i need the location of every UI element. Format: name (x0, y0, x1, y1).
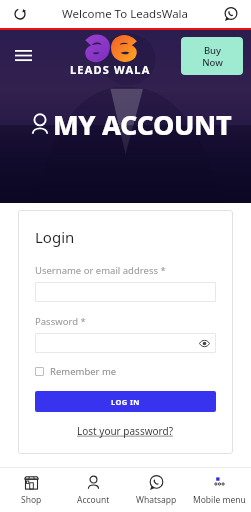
button[interactable]: Remember me (35, 365, 117, 378)
staticText: Whatsapp (136, 494, 177, 506)
staticText: Remember me (50, 365, 117, 378)
staticText: Shop (21, 494, 42, 506)
button[interactable]: Reload (8, 2, 32, 26)
button[interactable]: Mobile menu (188, 468, 251, 512)
button[interactable]: Show password (35, 333, 216, 353)
staticText: Buy Now (202, 44, 223, 68)
button[interactable]: Buy Now (181, 37, 243, 75)
button[interactable]: Shop (0, 468, 62, 512)
button[interactable] (35, 282, 216, 302)
staticText: Welcome To LeadsWala (62, 6, 189, 22)
button[interactable]: LOG IN (35, 391, 216, 412)
staticText: Password * (35, 315, 86, 328)
staticText: Username or email address * (35, 264, 166, 277)
staticText: LEADS WALA (70, 62, 151, 77)
staticText: Lost your password? (77, 424, 174, 438)
other: Show password (197, 336, 211, 350)
button[interactable]: Menu (6, 39, 40, 73)
staticText: Login (35, 227, 75, 247)
button[interactable]: Whatsapp (125, 468, 188, 512)
button[interactable]: Lost your password? (35, 424, 216, 438)
staticText: Account (77, 494, 110, 506)
staticText: LOG IN (111, 397, 140, 407)
button[interactable]: Account (62, 468, 125, 512)
staticText: MY ACCOUNT (53, 106, 232, 143)
staticText: Mobile menu (193, 494, 246, 506)
button[interactable]: WhatsApp (219, 2, 243, 26)
